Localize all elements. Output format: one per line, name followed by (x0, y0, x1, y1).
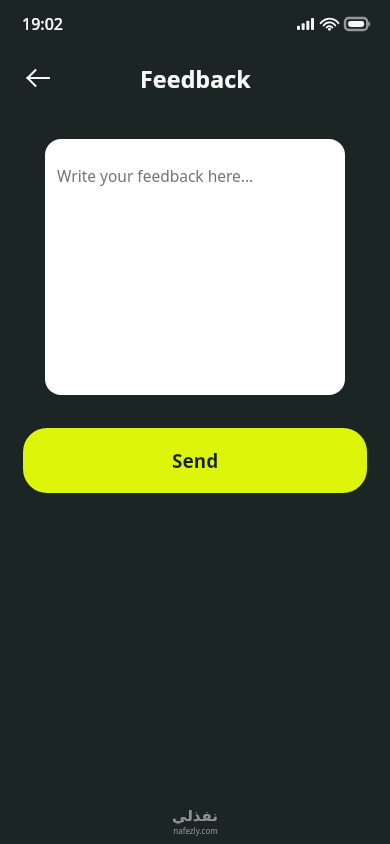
staticText: 19:02 (22, 13, 63, 35)
staticText: nafezly.com (173, 825, 218, 836)
staticText: Feedback (140, 63, 251, 94)
button[interactable]: Send (23, 428, 367, 493)
staticText: Send (172, 448, 219, 474)
staticText: نفذلي (172, 807, 218, 824)
button[interactable]: Write your feedback here... (45, 139, 345, 395)
staticText: Write your feedback here... (57, 165, 254, 186)
button[interactable]: Back (14, 54, 62, 102)
